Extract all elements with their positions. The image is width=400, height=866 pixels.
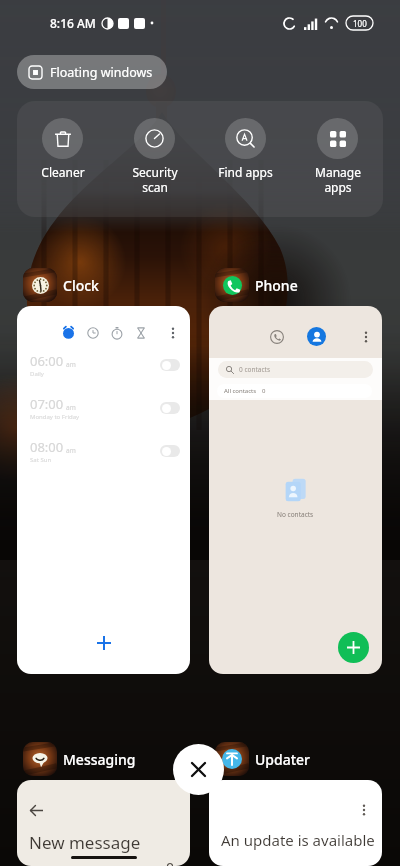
staticText: New message — [29, 831, 141, 854]
staticText: Cleaner — [41, 164, 85, 180]
button[interactable]: Messaging — [17, 742, 136, 776]
button[interactable]: Find apps — [200, 101, 291, 180]
button[interactable]: 06:00 — [30, 352, 180, 378]
button[interactable]: Alarm toggle — [160, 445, 180, 457]
button[interactable]: 08:00 — [30, 438, 180, 464]
button[interactable]: 0 contacts — [209, 306, 382, 674]
button[interactable]: Security scan — [109, 101, 200, 195]
button[interactable]: 06:00 — [17, 306, 190, 674]
button[interactable]: Add contact — [338, 632, 369, 663]
button[interactable]: Floating windows — [17, 55, 167, 89]
button[interactable]: 07:00 — [30, 395, 180, 421]
button[interactable]: Alarm toggle — [160, 402, 180, 414]
button[interactable]: 0 contacts — [218, 361, 373, 378]
button[interactable]: Cleaner — [17, 101, 108, 180]
staticText: No contacts — [277, 510, 314, 519]
button[interactable]: An update is available — [209, 780, 382, 866]
staticText: Security scan — [132, 164, 178, 195]
staticText: Sat Sun — [30, 456, 52, 464]
staticText: 8:16 AM — [50, 15, 96, 31]
staticText: All contacts — [224, 387, 257, 395]
button[interactable]: Phone — [209, 268, 298, 302]
staticText: 0 contacts — [239, 365, 271, 374]
staticText: Floating windows — [50, 64, 153, 81]
staticText: Updater — [255, 750, 311, 769]
button[interactable]: Manage apps — [292, 101, 383, 195]
staticText: 100 — [353, 18, 367, 29]
staticText: 06:00 — [30, 352, 64, 370]
staticText: am — [66, 403, 76, 412]
staticText: Clock — [63, 276, 99, 295]
staticText: An update is available — [221, 830, 375, 850]
staticText: Messaging — [63, 750, 136, 769]
button[interactable]: Close — [173, 744, 224, 795]
staticText: Monday to Friday — [30, 413, 80, 421]
button[interactable]: Clock — [17, 268, 99, 302]
staticText: Manage apps — [315, 164, 361, 195]
button[interactable]: Add alarm — [85, 624, 123, 662]
button[interactable]: New message — [17, 780, 190, 866]
button[interactable]: Updater — [209, 742, 311, 776]
button[interactable]: All contacts — [217, 384, 372, 398]
button[interactable]: Alarm toggle — [160, 359, 180, 371]
staticText: Daily — [30, 370, 44, 378]
staticText: 07:00 — [30, 395, 64, 413]
staticText: Find apps — [218, 164, 273, 180]
staticText: am — [66, 360, 76, 369]
staticText: 08:00 — [30, 438, 64, 456]
staticText: am — [66, 446, 76, 455]
staticText: 0 — [262, 387, 266, 395]
staticText: Phone — [255, 276, 298, 295]
